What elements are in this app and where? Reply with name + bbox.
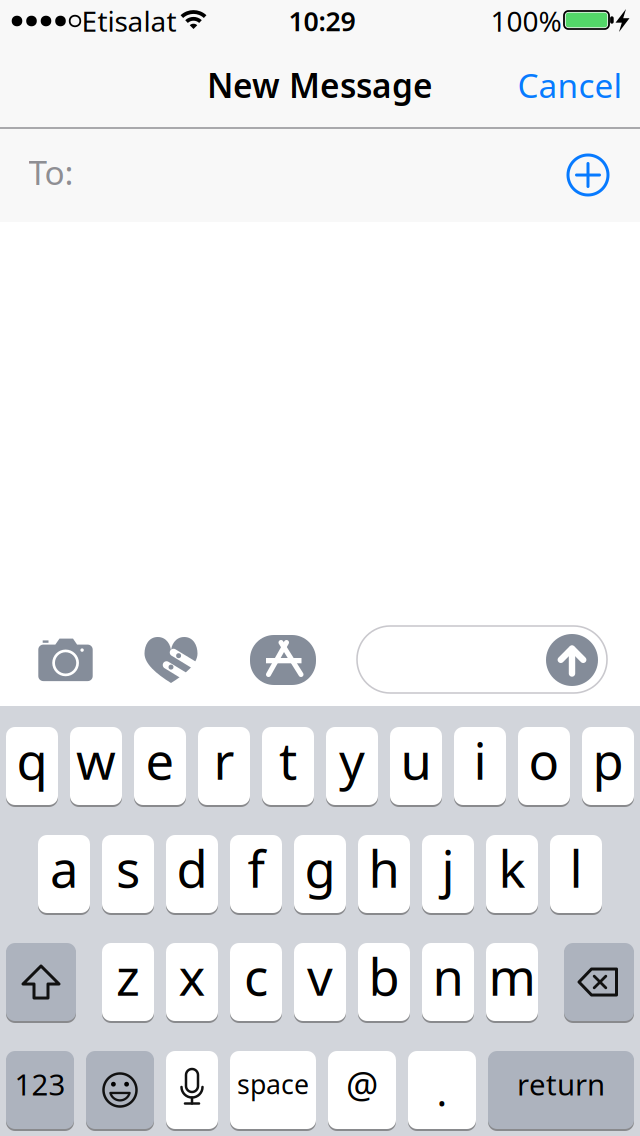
staticText: k [498, 834, 525, 902]
button[interactable]: Message field [357, 626, 607, 693]
staticText: z [116, 942, 140, 1010]
button[interactable]: z [102, 943, 154, 1021]
staticText: To: [28, 150, 73, 194]
button[interactable]: m [486, 943, 538, 1021]
button[interactable]: n [422, 943, 474, 1021]
staticText: o [528, 726, 559, 794]
staticText: p [592, 726, 623, 794]
button[interactable]: s [102, 835, 154, 913]
staticText: y [339, 726, 365, 794]
button[interactable]: App Store [248, 633, 318, 687]
button[interactable]: r [198, 727, 250, 805]
staticText: t [279, 726, 297, 794]
staticText: h [368, 834, 399, 902]
button[interactable]: Return [488, 1051, 634, 1129]
staticText: g [304, 834, 335, 902]
staticText: x [178, 942, 205, 1010]
button[interactable]: t [262, 727, 314, 805]
staticText: a [50, 834, 78, 902]
staticText: i [473, 726, 486, 794]
button[interactable]: u [390, 727, 442, 805]
staticText: Etisalat [81, 2, 176, 40]
staticText: @ [346, 1060, 378, 1108]
staticText: r [213, 726, 234, 794]
staticText: b [368, 942, 399, 1010]
staticText: n [432, 942, 463, 1010]
button[interactable]: Space [230, 1051, 316, 1129]
button[interactable]: h [358, 835, 410, 913]
staticText: 10:29 [288, 3, 355, 39]
button[interactable]: Send [546, 634, 598, 686]
staticText: 123 [14, 1064, 65, 1103]
staticText: 100% [490, 2, 561, 40]
button[interactable]: Camera [35, 636, 97, 685]
button[interactable]: Cancel [517, 63, 622, 107]
button[interactable]: f [230, 835, 282, 913]
button[interactable]: i [454, 727, 506, 805]
button[interactable]: v [294, 943, 346, 1021]
staticText: return [517, 1064, 605, 1103]
staticText: j [441, 834, 454, 902]
button[interactable]: l [550, 835, 602, 913]
button[interactable]: e [134, 727, 186, 805]
button[interactable]: Delete [564, 943, 634, 1021]
staticText: d [176, 834, 207, 902]
button[interactable]: Period [408, 1051, 476, 1129]
staticText: s [116, 834, 140, 902]
button[interactable]: Numbers [6, 1051, 74, 1129]
button[interactable]: j [422, 835, 474, 913]
staticText: v [307, 942, 333, 1010]
button[interactable]: Digital Touch [142, 634, 202, 686]
staticText: m [488, 942, 535, 1010]
button[interactable]: At [328, 1051, 396, 1129]
staticText: u [400, 726, 431, 794]
staticText: l [569, 834, 582, 902]
button[interactable]: Shift [6, 943, 76, 1021]
button[interactable]: Dictate [166, 1051, 218, 1129]
button[interactable]: g [294, 835, 346, 913]
button[interactable]: c [230, 943, 282, 1021]
button[interactable]: o [518, 727, 570, 805]
button[interactable]: Emoji [86, 1051, 154, 1129]
staticText: c [244, 942, 268, 1010]
staticText: f [247, 834, 264, 902]
button[interactable]: d [166, 835, 218, 913]
button[interactable]: x [166, 943, 218, 1021]
staticText: e [145, 726, 174, 794]
button[interactable]: w [70, 727, 122, 805]
staticText: w [76, 726, 116, 794]
button[interactable]: Add Contact [566, 153, 609, 196]
button[interactable]: k [486, 835, 538, 913]
button[interactable]: b [358, 943, 410, 1021]
button[interactable]: q [6, 727, 58, 805]
staticText: space [237, 1066, 309, 1102]
staticText: Cancel [517, 63, 622, 107]
staticText: New Message [207, 63, 433, 107]
button[interactable]: a [38, 835, 90, 913]
button[interactable]: y [326, 727, 378, 805]
staticText: . [436, 1064, 447, 1117]
button[interactable]: p [582, 727, 634, 805]
staticText: q [16, 726, 47, 794]
